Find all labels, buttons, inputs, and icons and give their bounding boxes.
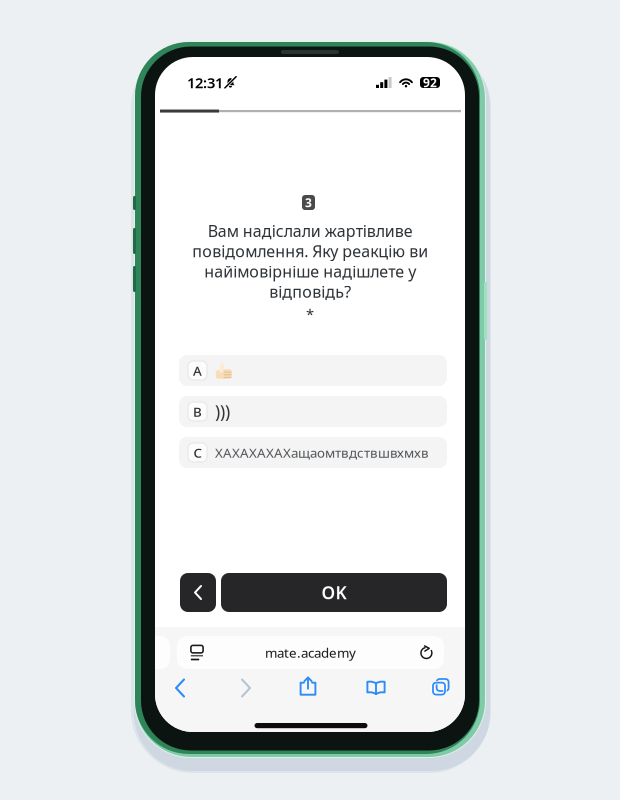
staticText: mate.academy — [265, 644, 356, 661]
staticText: 12:31 — [187, 73, 223, 92]
staticText: B — [193, 403, 202, 420]
button[interactable]: C — [179, 437, 447, 468]
button[interactable]: Back — [175, 678, 185, 697]
staticText: OK — [321, 581, 346, 604]
button[interactable]: OK — [221, 573, 447, 612]
staticText: C — [193, 444, 201, 461]
button[interactable]: Forward — [241, 678, 251, 697]
staticText: XAXAXAXAXaщаомтвдствшвхмхв — [215, 444, 429, 461]
staticText: * — [306, 304, 314, 324]
staticText: ))) — [215, 400, 230, 423]
button[interactable]: Tabs — [432, 678, 450, 696]
button[interactable]: A — [179, 355, 447, 386]
button[interactable]: Share — [299, 676, 316, 695]
staticText: A — [193, 362, 202, 379]
button[interactable]: mate.academy — [177, 636, 444, 669]
button[interactable]: Bookmarks — [366, 680, 386, 696]
staticText: 3 — [305, 194, 312, 210]
button[interactable]: Back — [180, 573, 216, 612]
staticText: Вам надіслали жартівливе повідомлення. Я… — [192, 220, 428, 302]
button[interactable]: B — [179, 396, 447, 427]
staticText: 92 — [423, 74, 437, 90]
